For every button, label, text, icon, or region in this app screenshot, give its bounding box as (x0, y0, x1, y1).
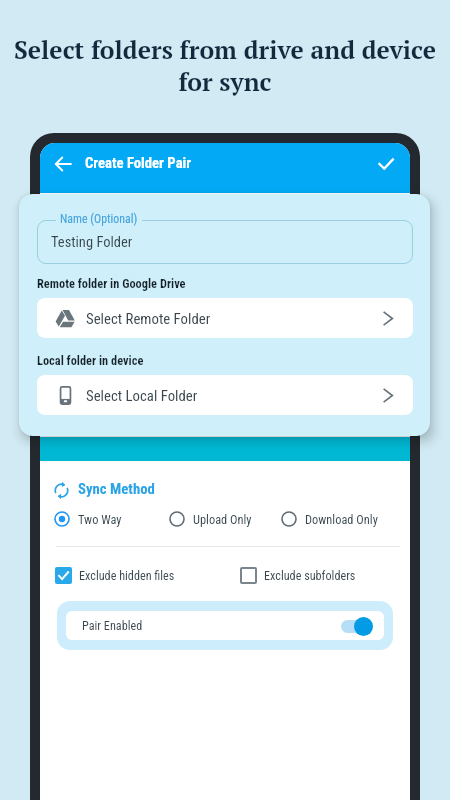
button[interactable]: Pair enabled toggle (339, 616, 373, 636)
staticText: Select Remote Folder (86, 310, 211, 327)
button[interactable]: Exclude subfolders (240, 567, 356, 584)
staticText: Remote folder in Google Drive (37, 276, 186, 291)
staticText: Exclude hidden files (79, 569, 175, 583)
button[interactable]: Pair Enabled (66, 611, 384, 640)
staticText: Two Way (78, 512, 122, 527)
button[interactable]: Sync Method (78, 480, 155, 497)
button[interactable]: Download Only (281, 511, 378, 527)
staticText: Testing Folder (51, 234, 133, 251)
staticText: Select Local Folder (86, 387, 198, 404)
button[interactable]: Two Way (54, 511, 122, 527)
staticText: Create Folder Pair (85, 154, 192, 171)
button[interactable]: Upload Only (169, 511, 252, 527)
staticText: Name (Optional) (60, 212, 138, 226)
staticText: Upload Only (193, 512, 252, 527)
staticText: Download Only (305, 512, 378, 527)
staticText: Pair Enabled (82, 619, 143, 633)
button[interactable]: Select Remote Folder (37, 298, 413, 338)
staticText: Select folders from drive and device for… (12, 33, 438, 98)
button[interactable]: Exclude hidden files (55, 567, 175, 584)
button[interactable]: Select Local Folder (37, 375, 413, 415)
staticText: Local folder in device (37, 353, 144, 368)
staticText: Exclude subfolders (264, 569, 356, 583)
button[interactable]: Save (372, 150, 400, 178)
button[interactable]: Back (49, 150, 77, 178)
